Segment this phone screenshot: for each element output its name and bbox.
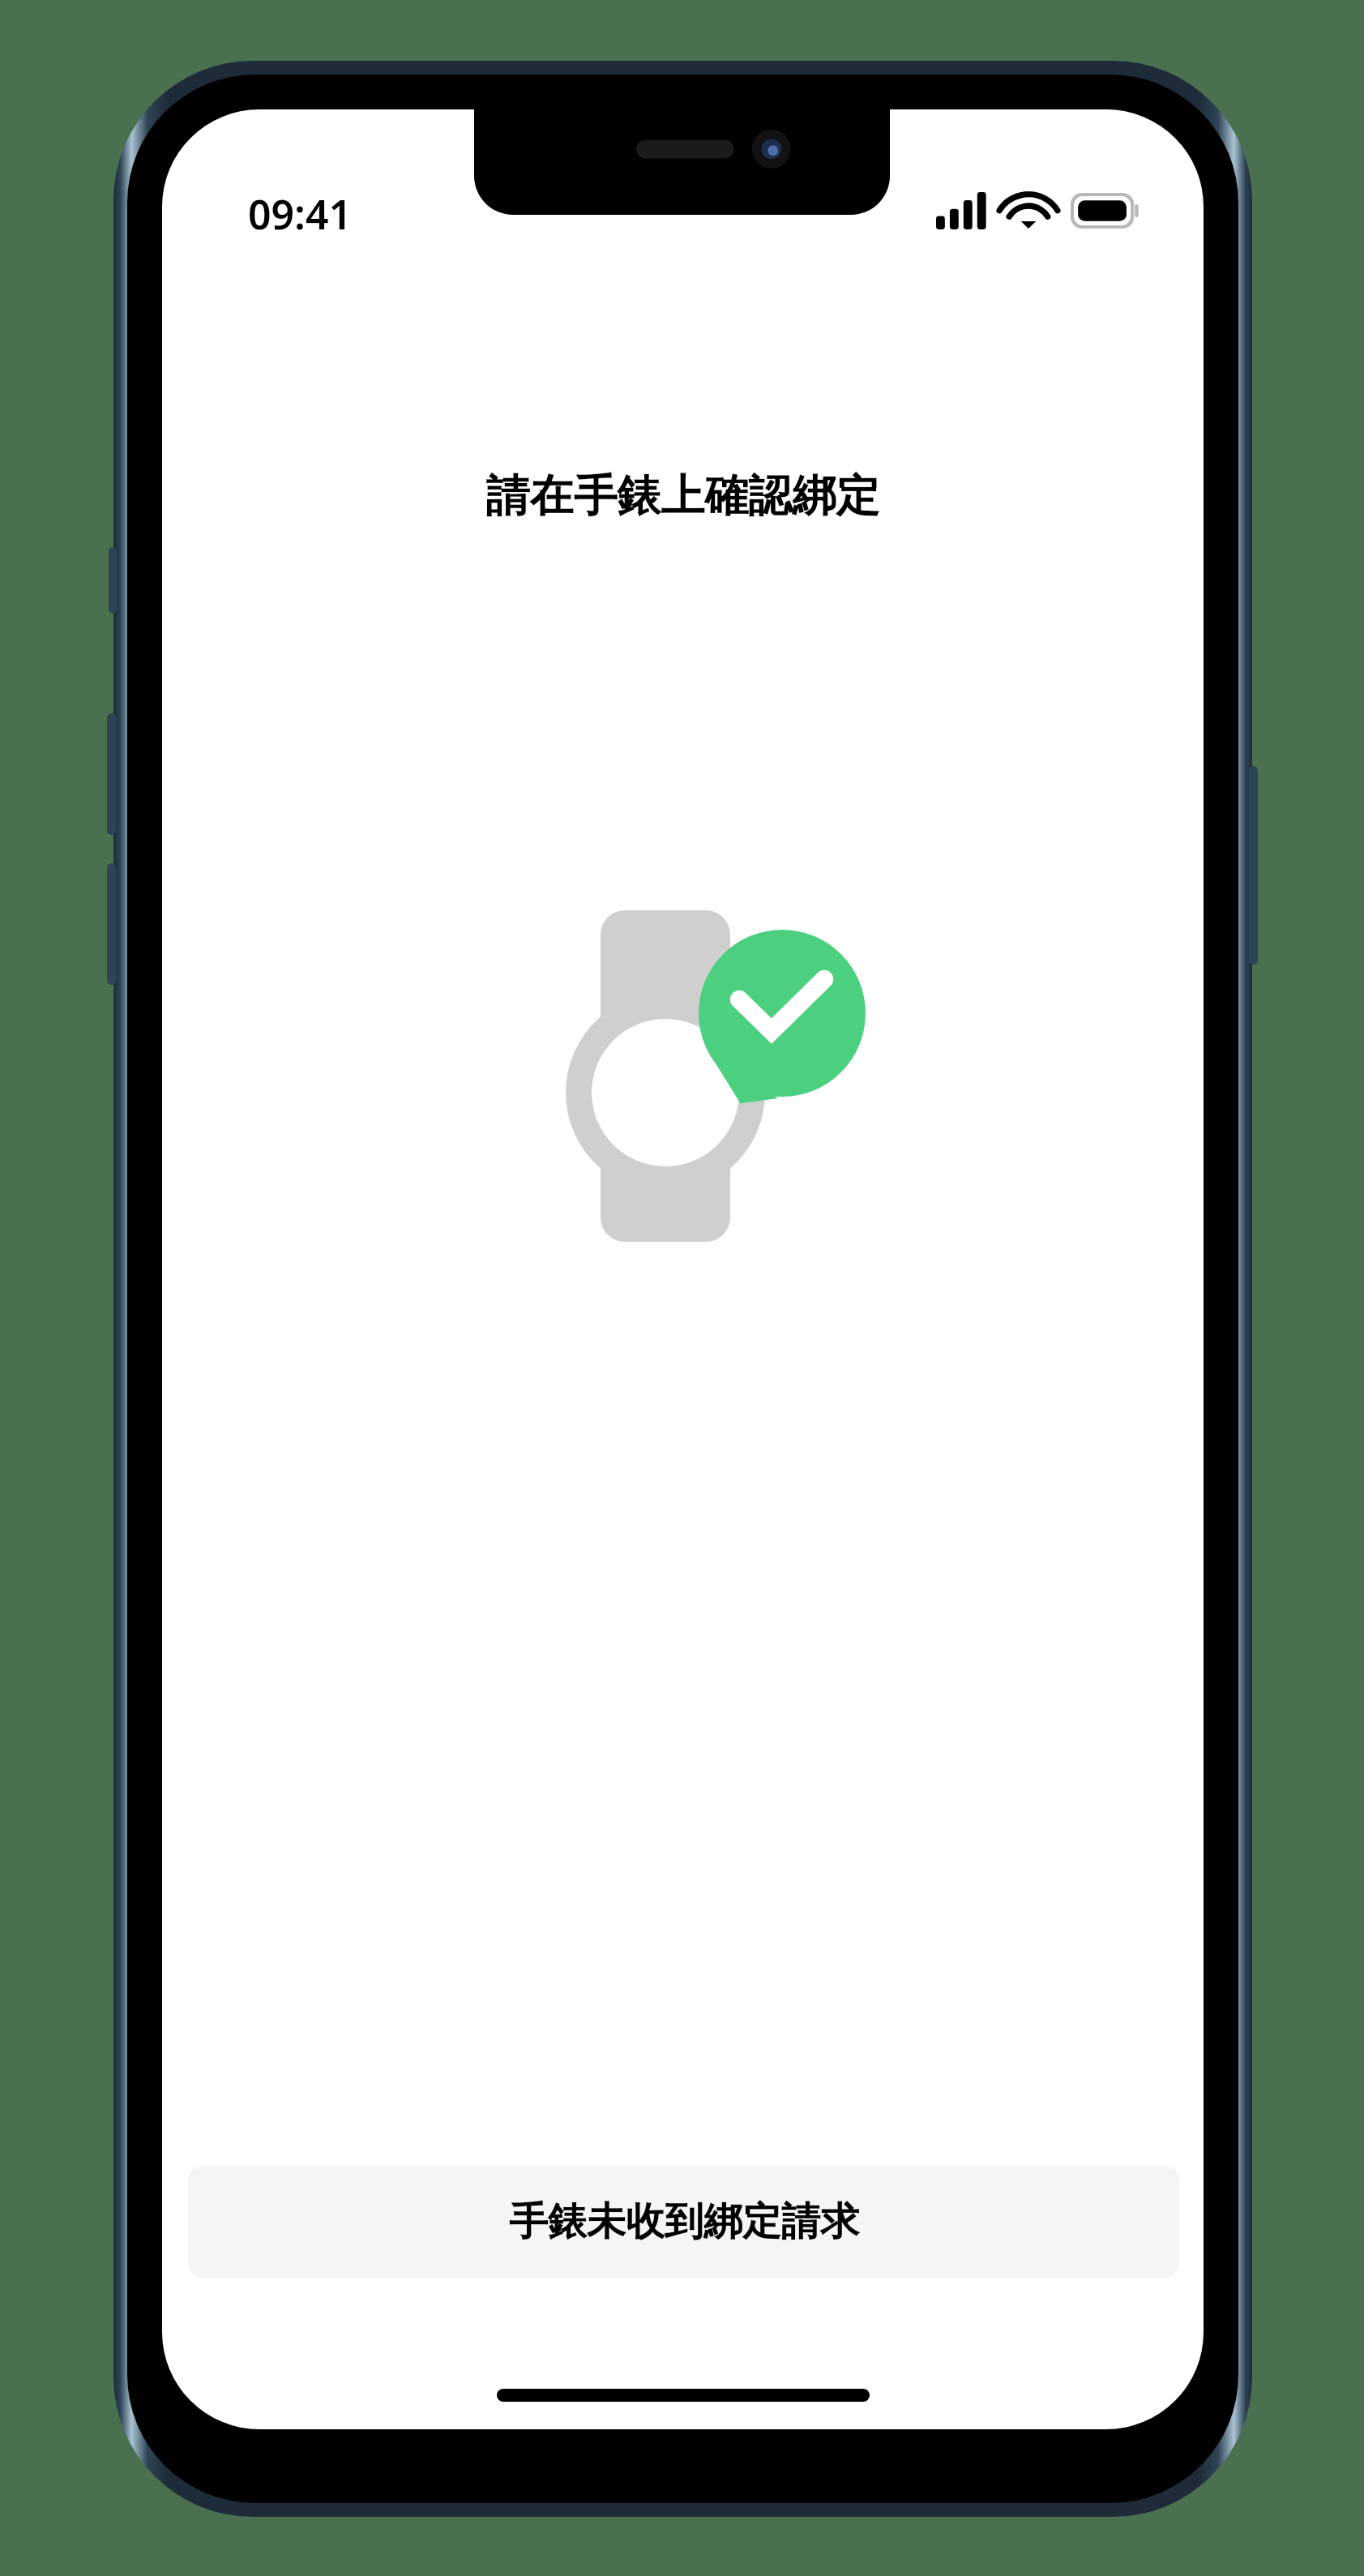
- other: Volume down: [107, 863, 116, 985]
- staticText: 手錶未收到綁定請求: [509, 2197, 859, 2246]
- staticText: 09:41: [215, 186, 385, 242]
- other: Volume up: [107, 713, 116, 835]
- other: Home indicator: [497, 2389, 870, 2402]
- staticText: 請在手錶上確認綁定: [162, 469, 1204, 524]
- other: Silent switch: [109, 547, 117, 614]
- button[interactable]: 手錶未收到綁定請求: [188, 2166, 1179, 2278]
